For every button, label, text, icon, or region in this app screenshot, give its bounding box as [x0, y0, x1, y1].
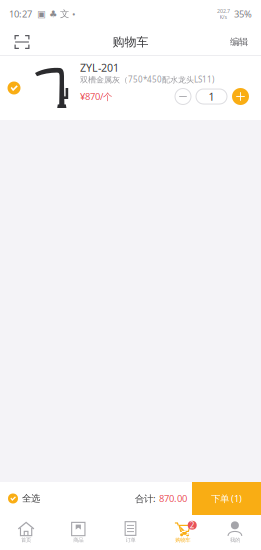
staticText: 订单	[125, 537, 135, 543]
button[interactable]: 下单 (1)	[192, 482, 261, 515]
staticText: 我的	[230, 537, 240, 543]
staticText: 202.7	[217, 7, 230, 14]
button[interactable]: Increase quantity	[232, 88, 249, 105]
button[interactable]: Select item	[0, 56, 28, 120]
button[interactable]: Scan	[7, 28, 37, 55]
button[interactable]: 我的	[209, 517, 261, 548]
button[interactable]: 商品	[52, 517, 104, 548]
staticText: 双槽金属灰（750*450配水龙头LS11)	[80, 74, 214, 85]
staticText: 购物车	[175, 537, 190, 543]
staticText: •	[72, 8, 76, 20]
button[interactable]: 2	[157, 517, 209, 548]
staticText: 全选	[22, 493, 40, 504]
staticText: 2	[190, 520, 195, 530]
staticText: 870.00	[159, 492, 187, 505]
button[interactable]: 编辑	[224, 28, 254, 55]
staticText: 首页	[21, 537, 31, 543]
staticText: 合计:	[135, 492, 156, 505]
staticText: 文	[60, 8, 69, 20]
staticText: ZYL-201	[80, 60, 119, 75]
button[interactable]: Decrease quantity	[175, 88, 191, 104]
staticText: K/s	[219, 13, 227, 21]
staticText: 10:27	[9, 8, 32, 20]
staticText: 购物车	[112, 35, 148, 49]
staticText: ¥870/个	[80, 90, 112, 103]
staticText: 编辑	[230, 36, 248, 48]
staticText: 下单 (1)	[211, 492, 242, 505]
staticText: 1	[208, 89, 214, 104]
button[interactable]: 全选	[0, 482, 46, 515]
staticText: ▣	[37, 9, 46, 19]
button[interactable]: 订单	[104, 517, 157, 548]
button[interactable]: 首页	[0, 517, 52, 548]
staticText: ♣	[49, 9, 57, 19]
staticText: 35%	[234, 8, 252, 20]
staticText: 商品	[73, 537, 83, 543]
